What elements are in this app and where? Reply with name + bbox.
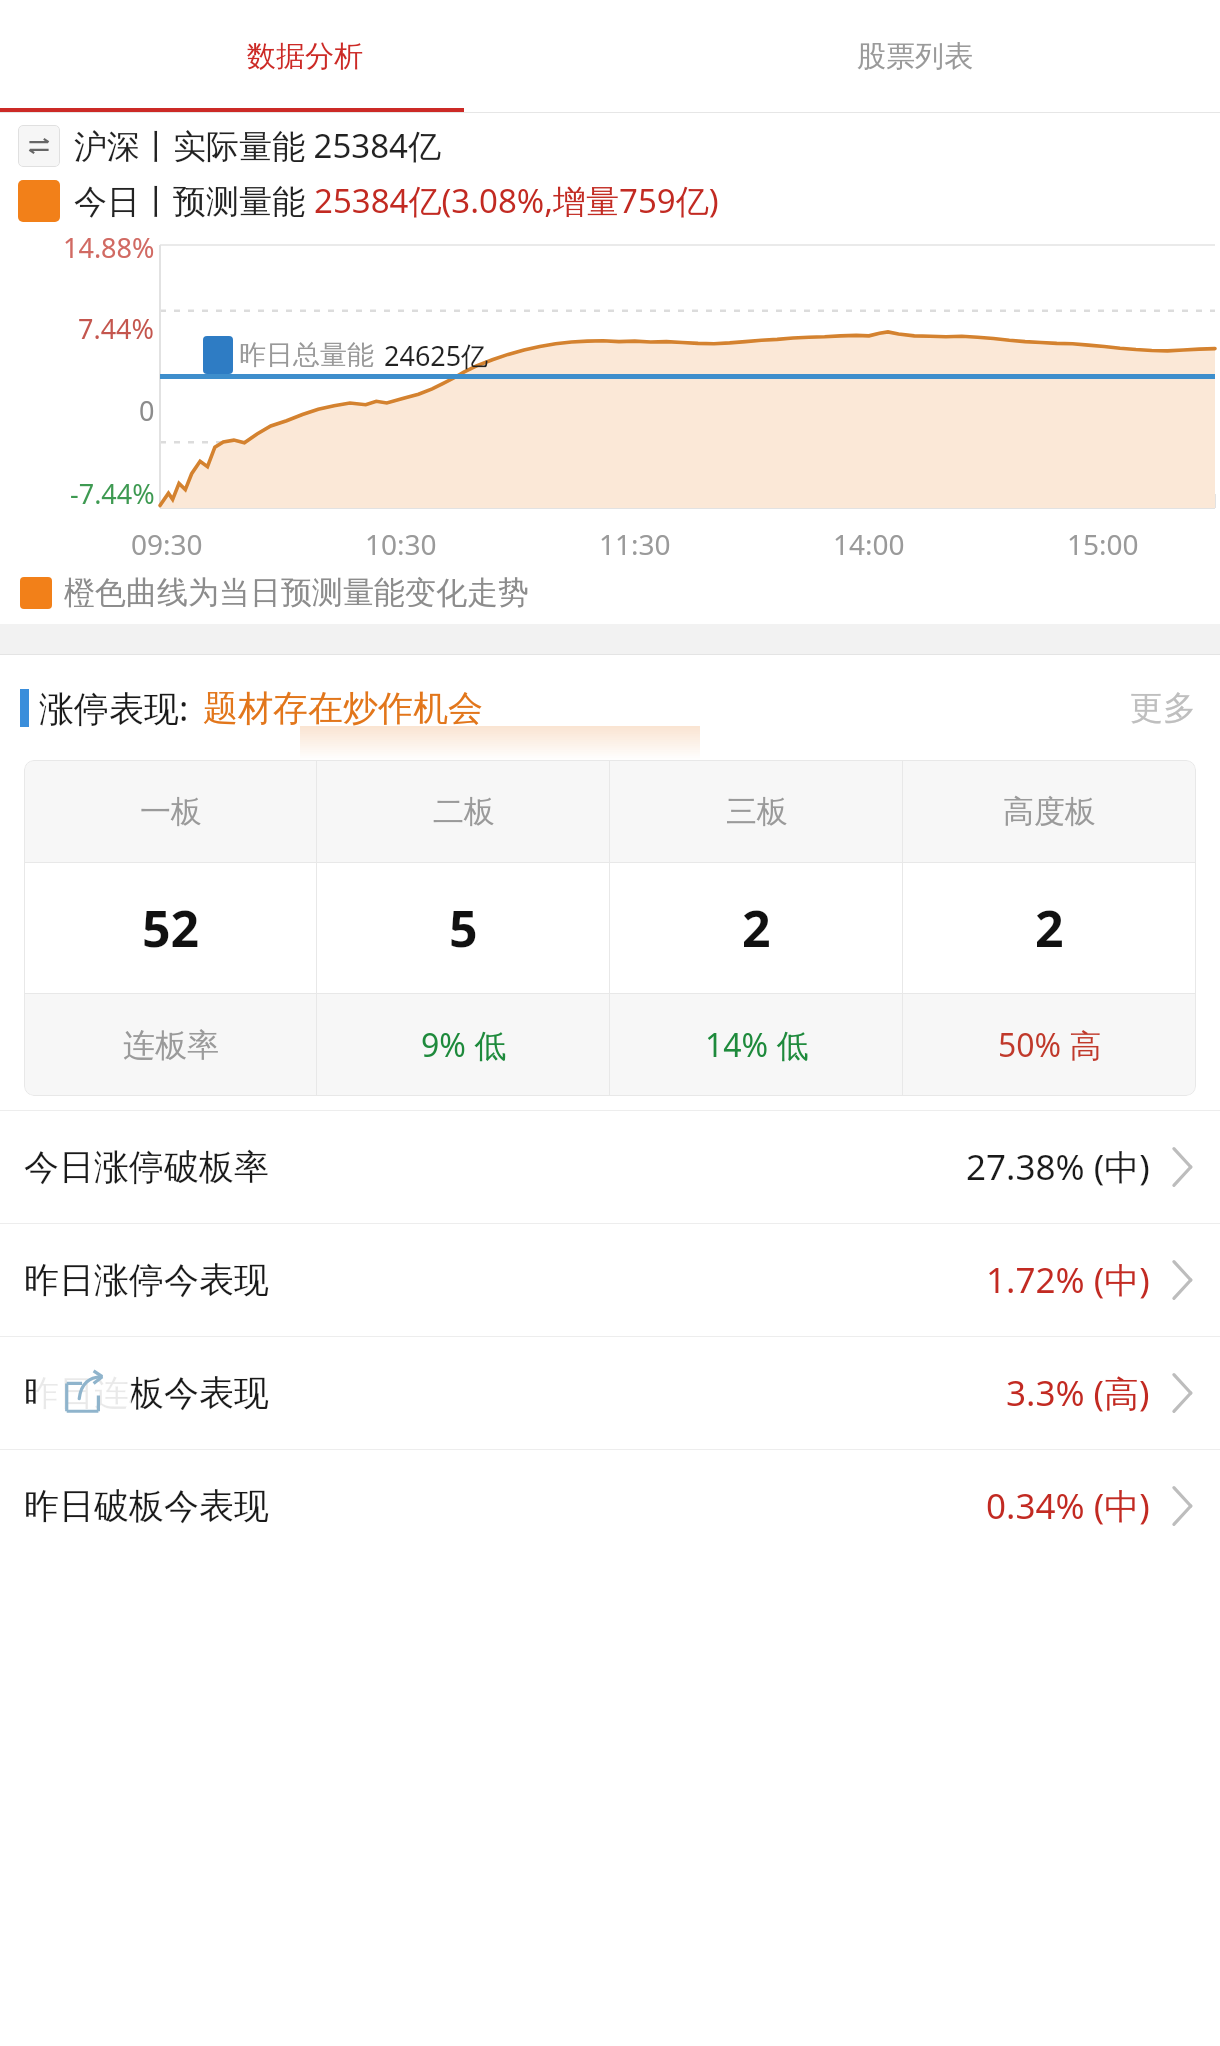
- staticText: 09:30: [131, 525, 203, 563]
- staticText: 3.3% (高): [1006, 1369, 1150, 1417]
- staticText: 52: [142, 894, 200, 962]
- staticText: 涨停表现:: [39, 684, 189, 732]
- staticText: 昨日破板今表现: [24, 1484, 269, 1528]
- button[interactable]: 更多: [1130, 687, 1196, 729]
- staticText: 今日涨停破板率: [24, 1145, 269, 1189]
- button[interactable]: 昨日涨停今表现: [0, 1224, 1220, 1336]
- button[interactable]: 连板率: [24, 994, 317, 1096]
- button[interactable]: 52: [24, 863, 317, 993]
- staticText: 沪深丨实际量能 25384亿: [74, 123, 441, 168]
- staticText: 题材存在炒作机会: [203, 686, 483, 730]
- staticText: 11:30: [599, 525, 671, 563]
- button[interactable]: 昨日破板今表现: [0, 1450, 1220, 1562]
- button[interactable]: 二板: [317, 760, 610, 862]
- button[interactable]: 2: [610, 863, 903, 993]
- staticText: 27.38% (中): [966, 1143, 1150, 1191]
- button[interactable]: 股票列表: [610, 0, 1220, 113]
- staticText: 昨日涨停今表现: [24, 1258, 269, 1302]
- button[interactable]: 5: [317, 863, 610, 993]
- staticText: 24625亿: [384, 337, 489, 374]
- staticText: 10:30: [365, 525, 437, 563]
- button[interactable]: 切换指数: [18, 125, 60, 167]
- staticText: 三板: [726, 792, 788, 831]
- staticText: 一板: [140, 792, 202, 831]
- staticText: 股票列表: [857, 38, 973, 75]
- staticText: 14:00: [833, 525, 905, 563]
- button[interactable]: 数据分析: [0, 0, 610, 113]
- button[interactable]: 9% 低: [317, 994, 610, 1096]
- staticText: 7.44%: [78, 310, 155, 347]
- staticText: 0: [139, 392, 155, 429]
- staticText: -7.44%: [70, 475, 155, 512]
- staticText: 2: [742, 894, 771, 962]
- button[interactable]: 14% 低: [610, 994, 903, 1096]
- button[interactable]: 2: [903, 863, 1196, 993]
- staticText: 连板率: [123, 1025, 219, 1065]
- staticText: 15:00: [1067, 525, 1139, 563]
- button[interactable]: 50% 高: [903, 994, 1196, 1096]
- staticText: 14% 低: [705, 1023, 809, 1067]
- staticText: 二板: [433, 792, 495, 831]
- staticText: 50% 高: [998, 1023, 1102, 1067]
- staticText: 9% 低: [421, 1023, 507, 1067]
- staticText: 2: [1035, 894, 1064, 962]
- button[interactable]: Share: [36, 1345, 132, 1441]
- button[interactable]: 一板: [24, 760, 317, 862]
- staticText: 25384亿(3.08%,增量759亿): [314, 178, 719, 223]
- staticText: 14.88%: [63, 229, 155, 266]
- button[interactable]: 昨日连板今表现: [0, 1337, 1220, 1449]
- button[interactable]: 高度板: [903, 760, 1196, 862]
- button[interactable]: 三板: [610, 760, 903, 862]
- staticText: 今日丨预测量能: [74, 178, 314, 223]
- staticText: 1.72% (中): [986, 1256, 1150, 1304]
- button[interactable]: 今日涨停破板率: [0, 1111, 1220, 1223]
- staticText: 橙色曲线为当日预测量能变化走势: [64, 573, 529, 612]
- staticText: 昨日连板今表现: [24, 1371, 269, 1415]
- staticText: 昨日总量能: [239, 338, 374, 372]
- staticText: 0.34% (中): [986, 1482, 1150, 1530]
- staticText: 数据分析: [247, 38, 363, 75]
- staticText: 5: [449, 894, 478, 962]
- staticText: 高度板: [1003, 792, 1096, 831]
- staticText: 更多: [1130, 687, 1196, 729]
